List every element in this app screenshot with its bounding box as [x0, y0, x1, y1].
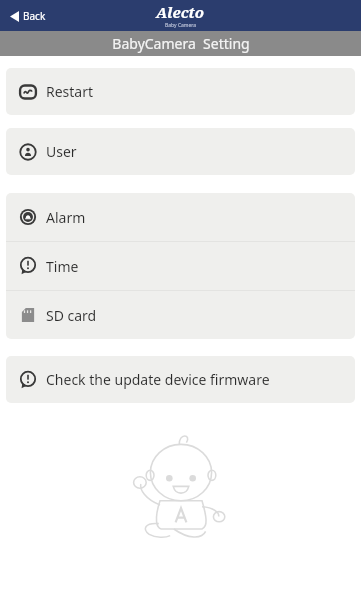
staticText: Baby Camera	[165, 22, 197, 29]
staticText: Time	[46, 257, 79, 276]
staticText: Restart	[46, 82, 94, 101]
button[interactable]: Time	[6, 242, 355, 290]
staticText: Alecto	[156, 2, 205, 22]
other: Alarm	[19, 208, 37, 226]
staticText: SD card	[46, 306, 97, 325]
staticText: BabyCamera Setting	[112, 34, 250, 53]
other: User	[19, 143, 37, 161]
staticText: Check the update device firmware	[46, 370, 270, 389]
button[interactable]: Check firmware update	[6, 356, 355, 403]
button[interactable]: Back	[6, 5, 50, 27]
button[interactable]: Alarm	[6, 193, 355, 241]
staticText: User	[46, 142, 77, 161]
staticText: Back	[23, 9, 46, 23]
other: Restart	[19, 83, 37, 101]
other: SD card	[19, 306, 37, 324]
other: Time	[19, 257, 37, 275]
button[interactable]: User	[6, 128, 355, 175]
button[interactable]: SD card	[6, 291, 355, 339]
button[interactable]: Restart	[6, 68, 355, 115]
staticText: Alarm	[46, 208, 86, 227]
other: Check firmware update	[19, 371, 37, 389]
